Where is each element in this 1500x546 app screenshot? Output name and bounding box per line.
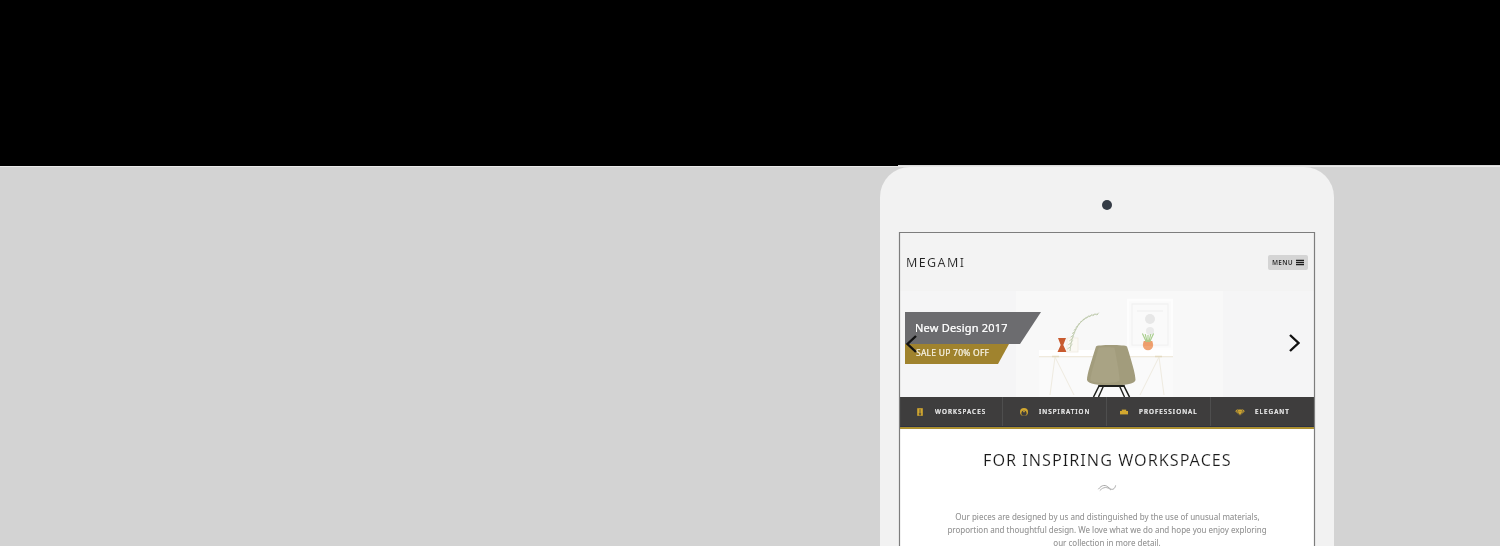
staticText: Our pieces are designed by us and distin… [955,511,1260,522]
staticText: New Design 2017 [915,320,1008,335]
staticText: MENU [1272,258,1293,267]
button[interactable]: ELEGANT [1211,397,1314,426]
button[interactable]: WORKSPACES [900,397,1002,426]
staticText: WORKSPACES [935,407,987,416]
button[interactable]: INSPIRATION [1003,397,1106,426]
staticText: SALE UP 70% OFF [916,347,990,359]
button[interactable]: Menu [1268,255,1308,270]
staticText: INSPIRATION [1039,407,1091,416]
staticText: our collection in more detail. [1053,537,1161,546]
staticText: MEGAMI [906,254,966,271]
button[interactable]: Previous slide [903,330,925,358]
button[interactable]: Next slide [1285,329,1307,357]
staticText: PROFESSIONAL [1139,407,1198,416]
button[interactable]: PROFESSIONAL [1107,397,1210,426]
staticText: FOR INSPIRING WORKSPACES [983,449,1232,471]
staticText: ELEGANT [1255,407,1290,416]
staticText: proportion and thoughtful design. We lov… [947,524,1267,535]
